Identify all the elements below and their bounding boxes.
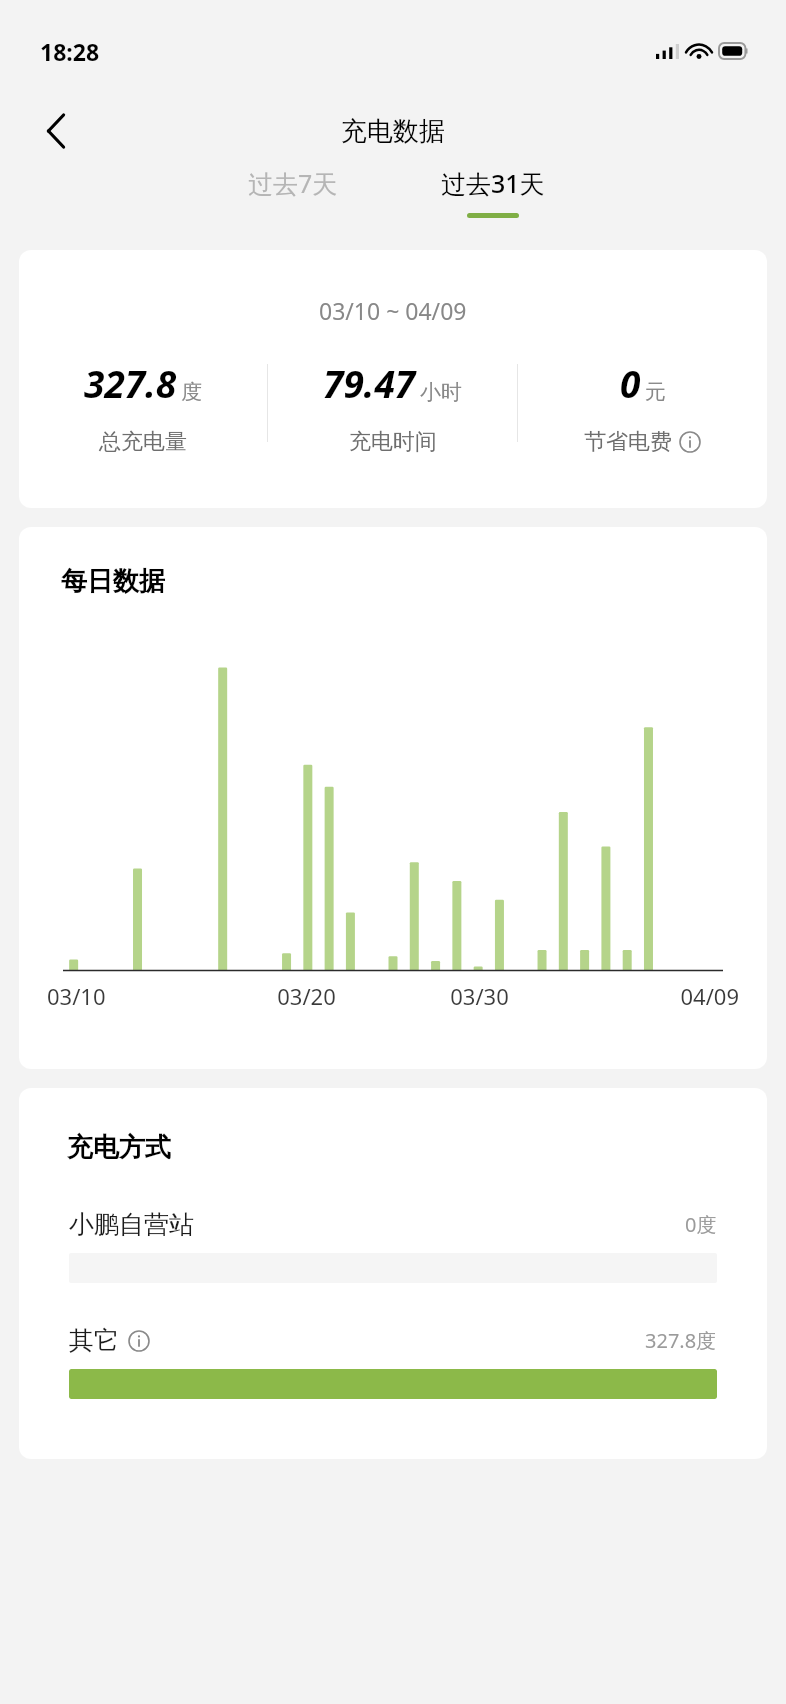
staticText: 03/10 — [47, 981, 220, 1011]
staticText: 充电时间 — [349, 428, 437, 456]
staticText: 总充电量 — [99, 428, 187, 456]
staticText: 充电方式 — [67, 1131, 171, 1164]
staticText: 小鹏自营站 — [69, 1209, 194, 1240]
staticText: 过去7天 — [248, 166, 338, 200]
staticText: 79.47 — [323, 358, 416, 408]
button[interactable]: Back — [30, 105, 82, 157]
staticText: 每日数据 — [61, 565, 165, 598]
staticText: 充电数据 — [341, 115, 445, 148]
button[interactable]: 过去31天 — [393, 166, 593, 234]
staticText: 度 — [181, 379, 202, 405]
staticText: 过去31天 — [441, 166, 545, 200]
staticText: 03/10 ~ 04/09 — [319, 295, 467, 326]
staticText: 0度 — [685, 1211, 717, 1238]
button[interactable]: Info about saved electricity fee — [679, 431, 701, 453]
staticText: 元 — [645, 379, 666, 405]
staticText: 327.8 — [84, 358, 177, 408]
button[interactable]: Info about other charging — [127, 1329, 151, 1353]
staticText: 03/30 — [393, 981, 566, 1011]
staticText: 03/20 — [220, 981, 393, 1011]
staticText: 小时 — [420, 379, 462, 405]
staticText: 节省电费 — [584, 428, 672, 456]
staticText: 04/09 — [566, 981, 739, 1011]
button[interactable]: 过去7天 — [193, 166, 393, 234]
staticText: 327.8度 — [645, 1327, 717, 1354]
staticText: 其它 — [69, 1325, 119, 1356]
staticText: 0 — [620, 358, 641, 408]
staticText: 18:28 — [40, 36, 100, 67]
